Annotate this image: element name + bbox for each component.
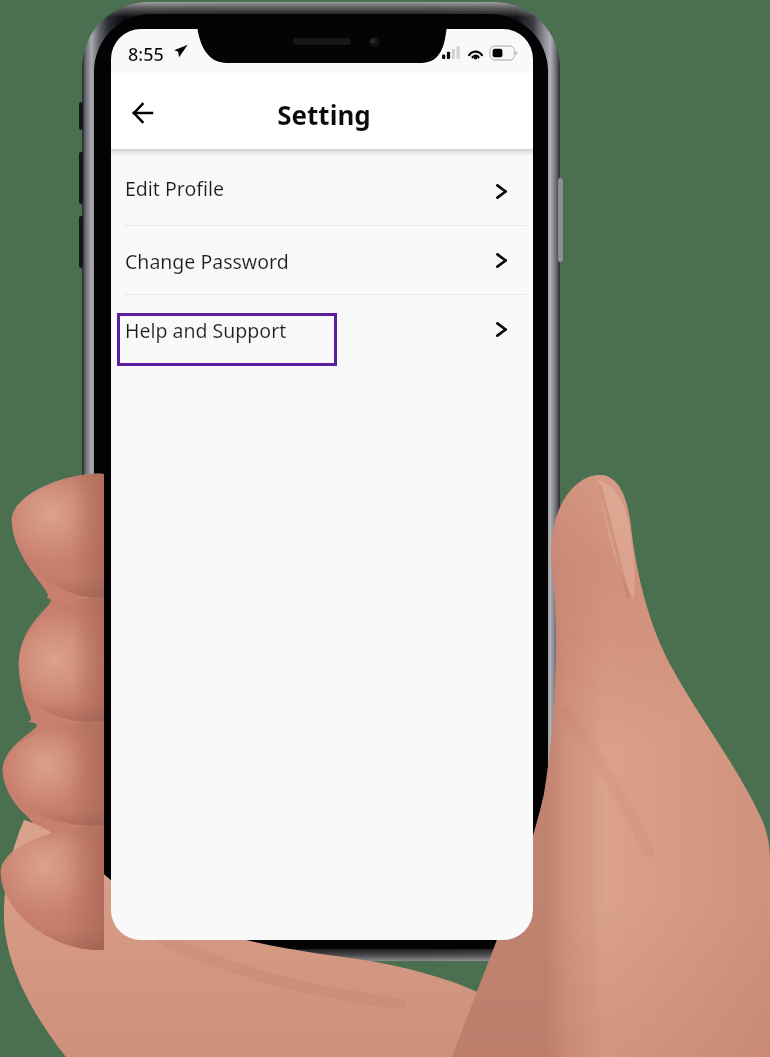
staticText: Edit Profile xyxy=(125,175,225,202)
staticText: Change Password xyxy=(125,248,289,275)
staticText: 8:55 xyxy=(128,42,164,67)
button[interactable]: Edit Profile xyxy=(111,149,533,225)
button[interactable]: Back xyxy=(118,88,164,134)
button[interactable]: Change Password xyxy=(111,226,533,294)
button[interactable]: Help and Support xyxy=(111,295,533,363)
staticText: Help and Support xyxy=(125,317,287,344)
staticText: Setting xyxy=(277,97,371,132)
